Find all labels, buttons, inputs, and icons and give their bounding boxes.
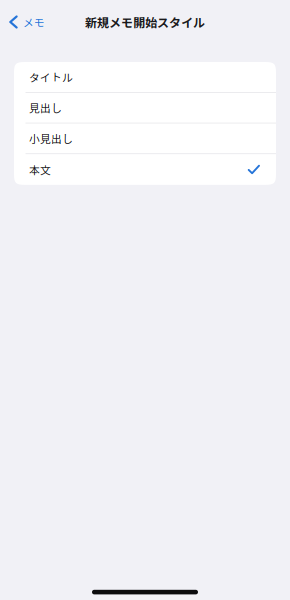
button[interactable]: 本文: [14, 154, 276, 185]
staticText: メモ: [23, 14, 45, 30]
staticText: 見出し: [29, 100, 62, 115]
button[interactable]: メモ: [0, 8, 45, 36]
staticText: 小見出し: [29, 131, 73, 146]
button[interactable]: タイトル: [14, 62, 276, 93]
staticText: 本文: [29, 162, 51, 177]
staticText: 新規メモ開始スタイル: [85, 13, 205, 31]
staticText: タイトル: [29, 69, 73, 85]
button[interactable]: 見出し: [14, 93, 276, 123]
button[interactable]: 小見出し: [14, 123, 276, 154]
